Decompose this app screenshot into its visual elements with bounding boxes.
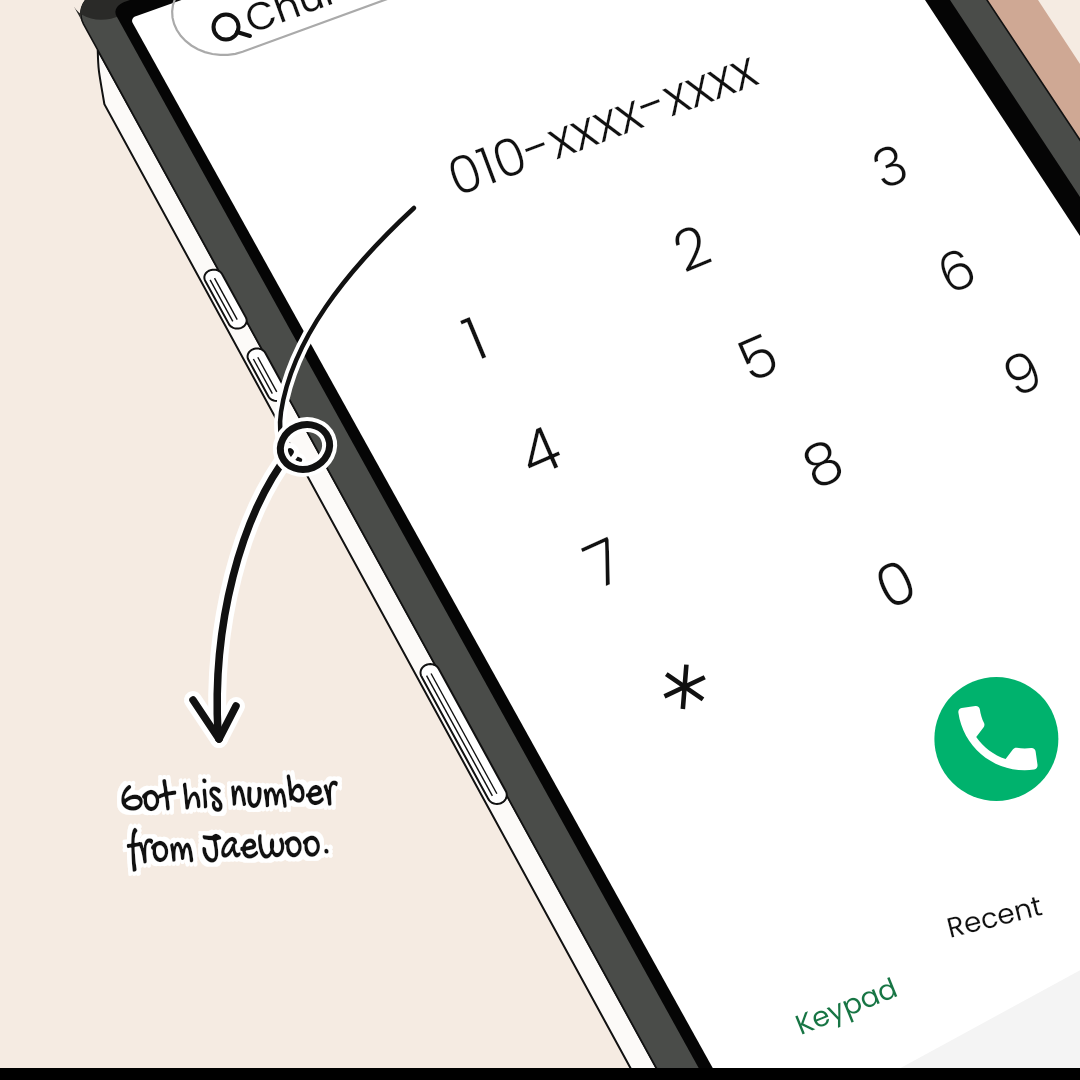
button[interactable]: Dial pad screen illustration [0, 0, 1080, 1080]
